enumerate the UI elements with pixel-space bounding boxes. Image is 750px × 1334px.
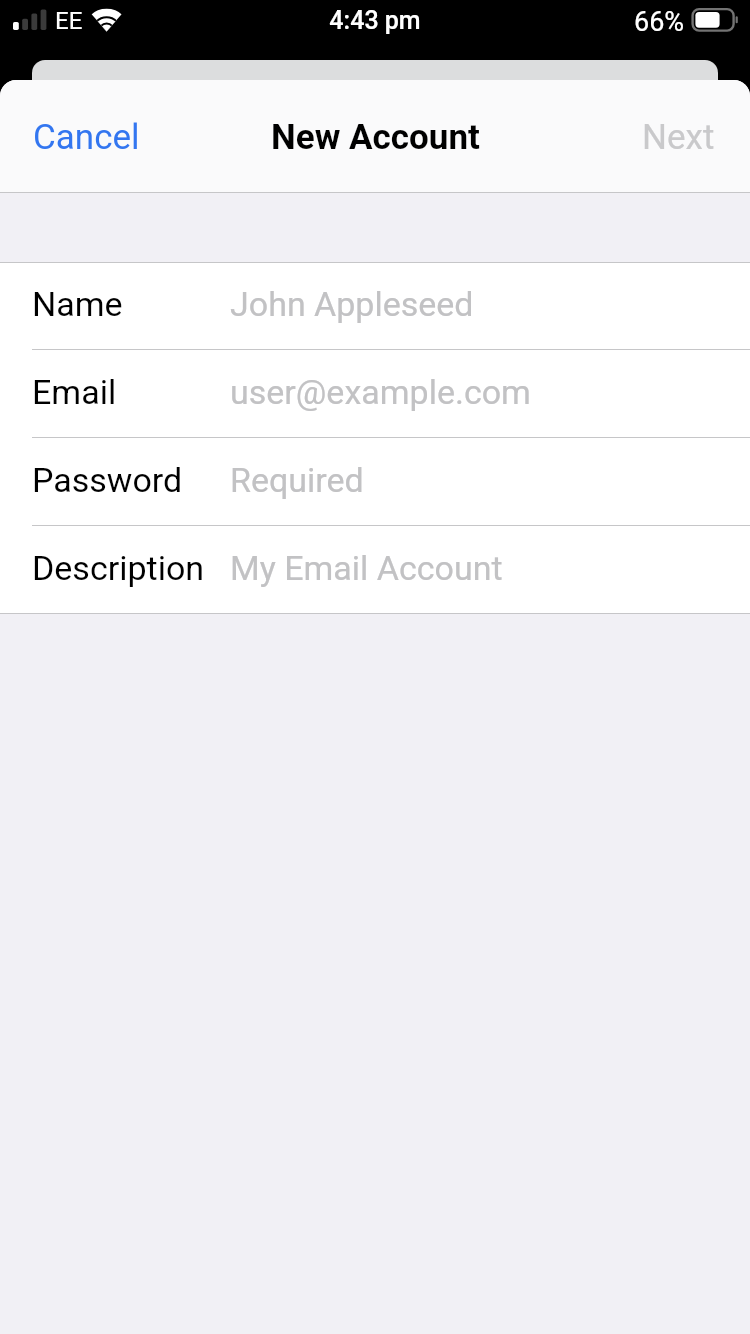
- staticText: 66%: [634, 6, 685, 38]
- staticText: Name: [32, 284, 123, 324]
- button[interactable]: Cancel: [21, 107, 152, 168]
- staticText: Password: [32, 460, 183, 500]
- button[interactable]: Description: [0, 526, 750, 613]
- button[interactable]: Next: [630, 107, 727, 168]
- staticText: Description: [32, 548, 205, 588]
- staticText: Cancel: [33, 117, 140, 158]
- staticText: Next: [642, 117, 715, 158]
- staticText: user@example.com: [230, 372, 531, 412]
- staticText: John Appleseed: [230, 284, 474, 324]
- button[interactable]: Password: [0, 438, 750, 525]
- staticText: Email: [32, 372, 117, 412]
- staticText: 4:43 pm: [329, 6, 421, 35]
- staticText: My Email Account: [230, 548, 503, 588]
- other: Signal strength and Wi-Fi: [13, 8, 123, 32]
- button[interactable]: Name: [0, 263, 750, 349]
- staticText: EE: [55, 7, 83, 35]
- staticText: Required: [230, 460, 364, 500]
- staticText: New Account: [271, 117, 480, 158]
- other: Battery 66 percent: [690, 8, 740, 32]
- button[interactable]: Email: [0, 350, 750, 437]
